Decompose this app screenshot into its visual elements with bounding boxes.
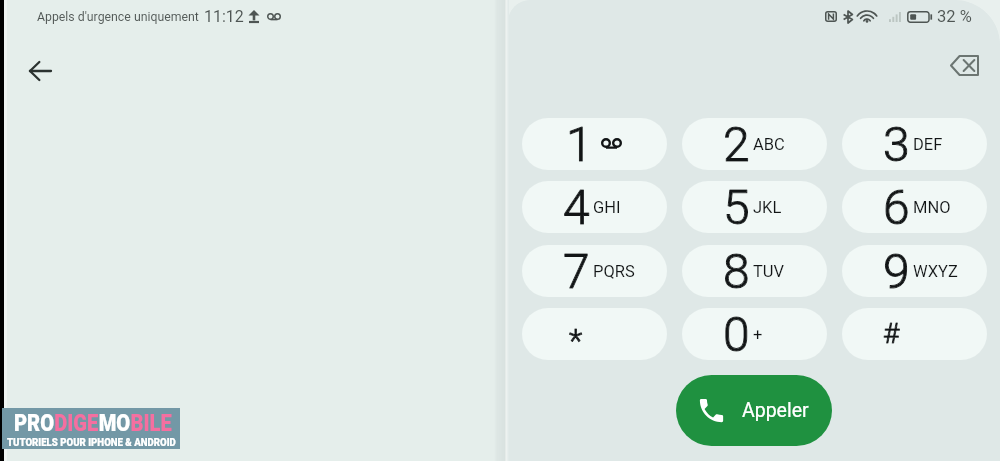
staticText: 6 bbox=[883, 181, 910, 231]
staticText: # bbox=[883, 317, 900, 350]
staticText: * bbox=[569, 322, 583, 358]
staticText: 32 % bbox=[937, 7, 972, 26]
staticText: 3 bbox=[883, 118, 910, 168]
staticText: 9 bbox=[883, 245, 910, 295]
staticText: 2 bbox=[723, 118, 750, 168]
staticText: JKL bbox=[753, 198, 782, 217]
staticText: ABC bbox=[753, 135, 785, 154]
button[interactable]: Appeler bbox=[676, 375, 832, 446]
staticText: 1 bbox=[566, 118, 593, 168]
staticText: 4 bbox=[563, 181, 590, 231]
staticText: + bbox=[753, 325, 763, 344]
button[interactable]: 2 bbox=[682, 118, 827, 170]
staticText: 1 bbox=[566, 118, 593, 168]
button[interactable]: 3 bbox=[842, 118, 987, 170]
button[interactable]: 0 bbox=[682, 308, 827, 360]
staticText: * bbox=[569, 322, 583, 358]
button[interactable]: 1 bbox=[522, 118, 667, 170]
staticText: MO bbox=[99, 409, 130, 437]
staticText: TUTORIELS POUR IPHONE & ANDROID bbox=[7, 436, 176, 449]
button[interactable]: # bbox=[842, 308, 987, 360]
staticText: Appeler bbox=[742, 399, 809, 422]
staticText: 4 bbox=[563, 181, 590, 231]
staticText: # bbox=[883, 317, 900, 350]
staticText: 0 bbox=[723, 308, 750, 358]
staticText: 9 bbox=[883, 245, 910, 295]
button[interactable]: Back bbox=[16, 47, 64, 95]
staticText: 5 bbox=[723, 181, 750, 231]
staticText: PQRS bbox=[593, 262, 635, 281]
button[interactable]: 9 bbox=[842, 245, 987, 297]
staticText: 2 bbox=[723, 118, 750, 168]
staticText: TUV bbox=[753, 262, 785, 281]
staticText: WXYZ bbox=[913, 262, 958, 281]
staticText: 3 bbox=[883, 118, 910, 168]
staticText: 8 bbox=[723, 245, 750, 295]
button[interactable]: Delete bbox=[940, 41, 988, 89]
staticText: 8 bbox=[723, 245, 750, 295]
button[interactable]: 4 bbox=[522, 181, 667, 233]
staticText: DEF bbox=[913, 135, 943, 154]
staticText: 7 bbox=[563, 245, 590, 295]
button[interactable]: 8 bbox=[682, 245, 827, 297]
staticText: DIGE bbox=[54, 409, 99, 437]
staticText: 5 bbox=[723, 181, 750, 231]
staticText: PRO bbox=[14, 409, 54, 437]
button[interactable]: 7 bbox=[522, 245, 667, 297]
staticText: 11:12 bbox=[204, 7, 244, 26]
button[interactable]: 5 bbox=[682, 181, 827, 233]
staticText: BILE bbox=[130, 409, 172, 437]
button[interactable]: 6 bbox=[842, 181, 987, 233]
staticText: Appels d'urgence uniquement bbox=[37, 10, 199, 24]
staticText: 7 bbox=[563, 245, 590, 295]
staticText: GHI bbox=[593, 198, 621, 217]
staticText: 0 bbox=[723, 308, 750, 358]
staticText: 6 bbox=[883, 181, 910, 231]
button[interactable]: * bbox=[522, 308, 667, 360]
staticText: MNO bbox=[913, 198, 951, 217]
